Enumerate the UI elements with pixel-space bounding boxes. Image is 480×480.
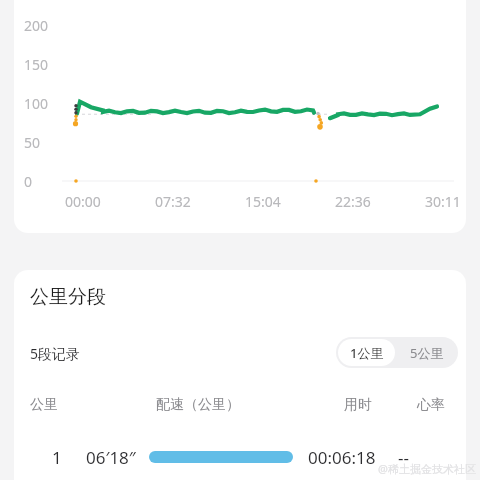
staticText: 30:11 xyxy=(425,192,461,211)
button[interactable]: 1公里 xyxy=(338,339,395,366)
staticText: 0 xyxy=(24,172,33,191)
staticText: 1 xyxy=(52,446,62,469)
staticText: 5段记录 xyxy=(30,344,81,363)
staticText: 配速（公里） xyxy=(156,396,240,414)
staticText: 心率 xyxy=(417,396,445,414)
staticText: 50 xyxy=(24,133,41,152)
staticText: 06′18″ xyxy=(86,446,136,469)
staticText: 公里 xyxy=(30,396,58,414)
button[interactable]: 5公里 xyxy=(397,337,456,368)
staticText: @稀土掘金技术社区 xyxy=(378,461,476,476)
staticText: 00:06:18 xyxy=(308,446,376,469)
staticText: 用时 xyxy=(344,396,372,414)
staticText: 22:36 xyxy=(335,192,371,211)
staticText: 07:32 xyxy=(155,192,191,211)
staticText: 00:00 xyxy=(65,192,101,211)
staticText: 公里分段 xyxy=(30,285,106,309)
button[interactable]: 1 xyxy=(14,437,466,477)
staticText: 5公里 xyxy=(410,344,444,362)
staticText: 200 xyxy=(24,16,49,35)
staticText: -- xyxy=(398,446,409,469)
staticText: 150 xyxy=(24,55,49,74)
staticText: 15:04 xyxy=(245,192,281,211)
staticText: 1公里 xyxy=(350,344,384,362)
staticText: 100 xyxy=(24,94,49,113)
